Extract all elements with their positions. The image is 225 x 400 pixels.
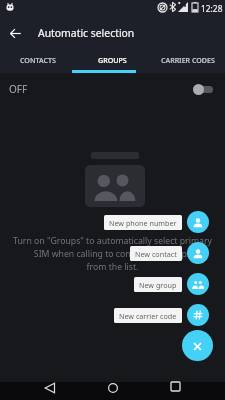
button[interactable]: Home — [95, 370, 130, 400]
button[interactable]: Back — [0, 18, 30, 48]
button[interactable]: New phone number — [104, 215, 182, 230]
button[interactable]: New contact — [187, 242, 209, 264]
staticText: New carrier code — [119, 311, 177, 321]
staticText: Turn on "Groups" to automatically select… — [13, 235, 212, 273]
button[interactable]: Recents — [158, 370, 193, 400]
staticText: New contact — [135, 249, 177, 259]
staticText: GROUPS — [98, 55, 127, 65]
staticText: OFF — [9, 82, 28, 96]
staticText: New phone number — [109, 218, 177, 228]
staticText: Automatic selection — [38, 26, 135, 40]
button[interactable]: GROUPS — [75, 49, 150, 71]
button[interactable]: New carrier code — [187, 304, 209, 326]
button[interactable]: New carrier code — [114, 308, 182, 323]
button[interactable]: New group — [134, 277, 182, 292]
staticText: CONTACTS — [20, 55, 56, 65]
staticText: New group — [139, 280, 177, 290]
button[interactable]: New phone number — [187, 211, 209, 233]
button[interactable]: CONTACTS — [0, 49, 75, 71]
button[interactable]: New contact — [130, 246, 182, 261]
button[interactable]: CARRIER CODES — [150, 49, 225, 71]
staticText: CARRIER CODES — [161, 55, 215, 65]
button[interactable]: New group — [187, 273, 209, 295]
button[interactable]: Close menu — [182, 330, 213, 361]
button[interactable]: Back — [32, 370, 67, 400]
staticText: 12:28 — [201, 3, 223, 14]
button[interactable]: OFF — [0, 73, 225, 105]
